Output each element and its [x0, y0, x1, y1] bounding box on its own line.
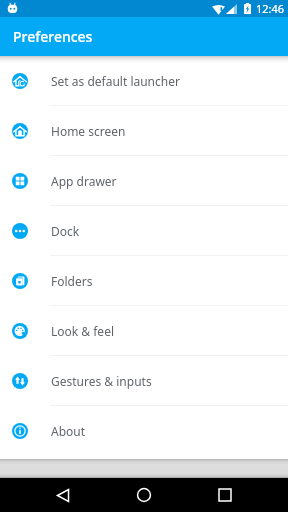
button[interactable]: Recents: [184, 478, 265, 512]
staticText: About: [51, 423, 86, 439]
button[interactable]: App drawer: [0, 156, 288, 206]
staticText: 12:46: [256, 1, 285, 16]
button[interactable]: Folders: [0, 256, 288, 306]
staticText: Look & feel: [51, 323, 115, 339]
button[interactable]: Back: [23, 478, 103, 512]
staticText: Folders: [51, 273, 93, 289]
staticText: Set as default launcher: [51, 73, 180, 89]
button[interactable]: Look & feel: [0, 306, 288, 356]
button[interactable]: About: [0, 406, 288, 456]
staticText: Home screen: [51, 123, 126, 139]
button[interactable]: Gestures & inputs: [0, 356, 288, 406]
staticText: Preferences: [13, 27, 93, 46]
staticText: Dock: [51, 223, 80, 239]
button[interactable]: Dock: [0, 206, 288, 256]
staticText: App drawer: [51, 173, 117, 189]
button[interactable]: Set as default launcher: [0, 56, 288, 106]
staticText: Gestures & inputs: [51, 373, 152, 389]
button[interactable]: Home: [103, 478, 184, 512]
button[interactable]: Home screen: [0, 106, 288, 156]
